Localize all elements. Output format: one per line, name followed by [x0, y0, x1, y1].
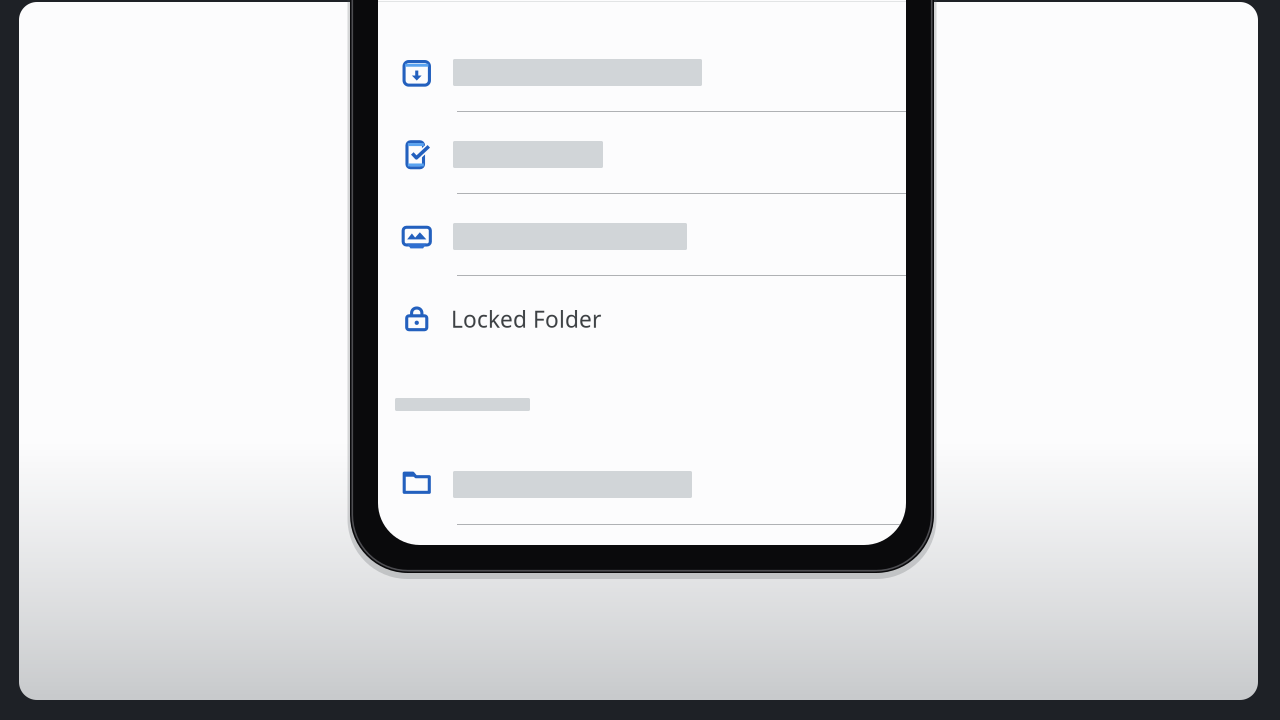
button[interactable]: Free up space	[378, 125, 906, 207]
button[interactable]: Photo frame	[378, 207, 906, 289]
staticText: Locked Folder	[451, 304, 601, 334]
button[interactable]: Archive	[378, 43, 906, 125]
button[interactable]: Folder	[378, 455, 906, 537]
button[interactable]: Locked Folder	[378, 289, 906, 371]
